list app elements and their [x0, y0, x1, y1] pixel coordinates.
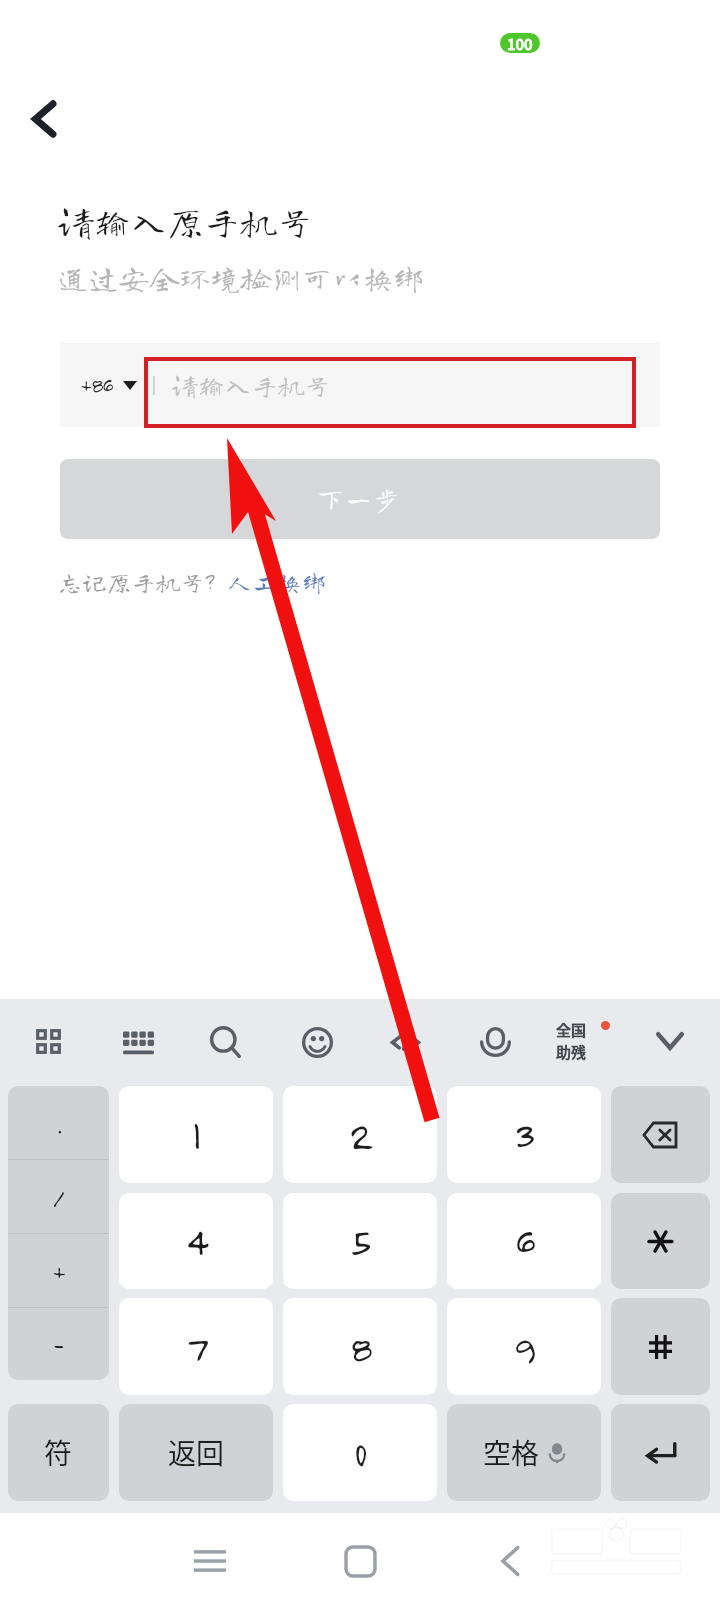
button[interactable]: 8 [283, 1298, 437, 1395]
staticText: / [52, 1182, 65, 1212]
button[interactable]: Asterisk [611, 1193, 710, 1289]
button[interactable]: 6 [447, 1193, 601, 1289]
button[interactable]: 5 [283, 1193, 437, 1289]
staticText: 6 [515, 1217, 534, 1265]
staticText: 0 [354, 1431, 366, 1475]
button[interactable]: 3 [447, 1086, 601, 1183]
button[interactable]: Back [481, 1532, 539, 1590]
button[interactable]: Hash [611, 1298, 710, 1395]
button[interactable]: 9 [447, 1298, 601, 1395]
button[interactable]: +86 [60, 343, 660, 427]
button[interactable]: Enter [611, 1404, 710, 1501]
staticText: 1 [192, 1111, 200, 1159]
staticText: 空格 [483, 1432, 540, 1473]
staticText: 7 [186, 1323, 207, 1371]
staticText: 忘记原手机号? [58, 570, 215, 594]
button[interactable]: Backspace [611, 1086, 710, 1183]
staticText: 3 [514, 1111, 534, 1159]
staticText: 助残 [556, 1041, 587, 1063]
button[interactable]: Keyboard [106, 1010, 170, 1074]
button[interactable]: - [8, 1308, 109, 1380]
button[interactable]: 全国 [556, 1019, 614, 1067]
button[interactable]: Hide keyboard [638, 1009, 702, 1073]
button[interactable]: 符 [8, 1404, 109, 1501]
staticText: 人工换绑 [227, 570, 327, 594]
staticText: 下一步 [318, 487, 403, 512]
staticText: + [52, 1256, 66, 1286]
staticText: 4 [186, 1217, 207, 1265]
staticText: 通过安全环境检测可以换绑 [58, 263, 424, 293]
staticText: 返回 [168, 1432, 225, 1473]
staticText: 2 [349, 1111, 372, 1159]
button[interactable]: Voice [463, 1010, 527, 1074]
button[interactable]: Menu [181, 1532, 239, 1590]
button[interactable]: 2 [283, 1086, 437, 1183]
button[interactable]: Apps [16, 1009, 80, 1073]
staticText: 请输入原手机号 [58, 203, 314, 239]
staticText: . [57, 1108, 61, 1138]
button[interactable]: Code [373, 1010, 437, 1074]
button[interactable]: 0 [283, 1404, 437, 1501]
staticText: 全国 [556, 1019, 587, 1041]
button[interactable]: . [8, 1086, 109, 1159]
staticText: 100 [507, 33, 533, 53]
staticText: 9 [513, 1323, 535, 1371]
button[interactable]: 7 [119, 1298, 273, 1395]
button[interactable]: / [8, 1160, 109, 1233]
button[interactable]: 空格 [447, 1404, 601, 1501]
button[interactable]: 1 [119, 1086, 273, 1183]
button[interactable]: Back [10, 84, 80, 154]
button[interactable]: 返回 [119, 1404, 273, 1501]
staticText: 请输入手机号 [172, 372, 332, 398]
button[interactable]: Search [194, 1010, 258, 1074]
button[interactable]: 人工换绑 [227, 570, 327, 594]
button[interactable]: 4 [119, 1193, 273, 1289]
staticText: 5 [350, 1217, 370, 1265]
button[interactable]: + [8, 1234, 109, 1307]
staticText: 8 [350, 1323, 371, 1371]
staticText: 符 [44, 1432, 73, 1473]
button[interactable]: Home [331, 1532, 389, 1590]
button[interactable]: Emoji [285, 1010, 349, 1074]
staticText: +86 [80, 372, 113, 398]
button[interactable]: 下一步 [60, 459, 660, 539]
staticText: - [53, 1329, 64, 1359]
